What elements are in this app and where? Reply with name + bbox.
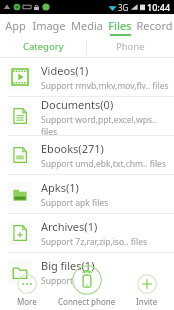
- staticText: Ebooks(271): [41, 141, 104, 156]
- staticText: Phone: [116, 40, 145, 53]
- button[interactable]: Files: [106, 14, 134, 36]
- button[interactable]: Videos(1): [0, 58, 174, 96]
- staticText: Category: [23, 40, 64, 53]
- button[interactable]: Image: [30, 14, 68, 36]
- staticText: Media: [71, 18, 103, 33]
- staticText: Support rmvb,mkv,mov,flv.. files: [41, 80, 169, 92]
- staticText: Image: [32, 18, 66, 33]
- staticText: Videos(1): [41, 63, 89, 78]
- staticText: Support umd,ebk,txt,chm.. files: [41, 158, 166, 170]
- staticText: 10:44: [147, 1, 171, 13]
- staticText: Archives(1): [41, 219, 98, 234]
- button[interactable]: App: [0, 14, 30, 36]
- other: Invite: [137, 274, 157, 294]
- button[interactable]: Ebooks(271): [0, 136, 174, 174]
- button[interactable]: More: [0, 264, 53, 310]
- staticText: Big files(1): [41, 258, 95, 273]
- other: More: [17, 274, 37, 294]
- button[interactable]: Category: [0, 36, 86, 57]
- staticText: Support word,ppt,excel,wps.. files: [41, 114, 174, 135]
- staticText: Documents(0): [41, 97, 114, 112]
- button[interactable]: Archives(1): [0, 214, 174, 252]
- button[interactable]: Media: [68, 14, 106, 36]
- button[interactable]: Apks(1): [0, 175, 174, 213]
- staticText: Files: [108, 18, 132, 33]
- staticText: More: [17, 296, 37, 307]
- staticText: Connect phone: [58, 296, 116, 307]
- staticText: Support apk files: [41, 197, 109, 209]
- button[interactable]: Record: [134, 14, 174, 36]
- button[interactable]: Phone: [87, 36, 174, 57]
- staticText: App: [5, 18, 26, 33]
- staticText: Support: [41, 275, 76, 287]
- staticText: 3G: [118, 2, 129, 13]
- other: Connect phone: [72, 265, 102, 295]
- button[interactable]: Big files(1): [0, 253, 174, 291]
- button[interactable]: Connect phone: [53, 264, 120, 310]
- staticText: Support 7z,rar,zip,iso.. files: [41, 236, 148, 248]
- staticText: Invite: [136, 296, 158, 307]
- button[interactable]: Invite: [120, 264, 174, 310]
- staticText: Record: [136, 18, 173, 33]
- button[interactable]: Documents(0): [0, 97, 174, 135]
- staticText: Apks(1): [41, 180, 79, 195]
